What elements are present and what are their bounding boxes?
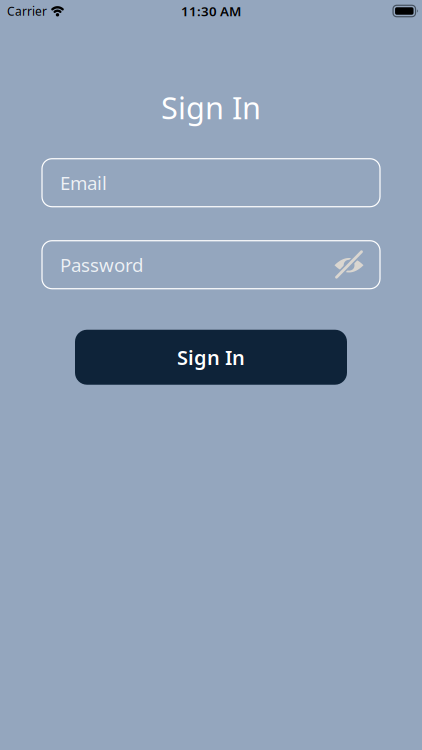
staticText: Password [60,252,143,277]
button[interactable]: Sign In [75,330,347,385]
button[interactable]: Password [42,241,380,289]
button[interactable] [334,250,364,280]
staticText: 11:30 AM [181,2,241,20]
staticText: Sign In [177,344,245,370]
staticText: Email [60,170,107,195]
button[interactable]: Email [42,159,380,207]
staticText: Carrier [7,3,47,19]
staticText: Sign In [161,87,261,128]
